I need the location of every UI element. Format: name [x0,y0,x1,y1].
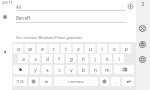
staticText: g [70,56,73,62]
staticText: ?123 [16,79,24,84]
staticText: k [106,56,109,62]
button[interactable]: m [102,65,112,74]
button[interactable]: Leertaste [54,77,98,86]
button[interactable]: n [90,65,100,74]
button[interactable]: Back [2,49,8,55]
staticText: w [28,46,32,52]
button[interactable]: Settings [100,77,109,86]
staticText: f [58,56,60,62]
staticText: t [65,46,67,52]
button[interactable]: i [97,44,107,53]
staticText: b [82,67,85,73]
staticText: x [46,67,49,73]
button[interactable]: More options [141,2,145,6]
button[interactable]: An [16,3,126,11]
staticText: z [77,46,80,52]
button[interactable]: d [42,54,52,63]
button[interactable]: z [73,44,83,53]
staticText: n [94,67,97,73]
staticText: m [105,67,110,73]
button[interactable]: j [90,54,100,63]
button[interactable]: Power [139,41,146,48]
button[interactable]: x [42,65,52,74]
button[interactable]: l [114,54,124,63]
staticText: c [58,67,61,73]
button[interactable]: t [61,44,71,53]
button[interactable]: y [30,65,40,74]
button[interactable]: s [30,54,40,63]
staticText: e [41,46,44,52]
staticText: i [101,46,103,52]
button[interactable]: Add recipient [127,3,134,10]
button[interactable]: u [85,44,95,53]
staticText: y [34,67,37,73]
staticText: de [44,79,49,84]
button[interactable]: v [66,65,76,74]
staticText: d [46,56,49,62]
button[interactable]: Backspace [114,65,134,74]
button[interactable]: g [66,54,76,63]
staticText: An [16,4,22,10]
button[interactable]: o [109,44,119,53]
staticText: 20:11 [2,0,13,6]
button[interactable]: q [13,44,23,53]
staticText: u [89,46,92,52]
staticText: s [34,56,37,62]
staticText: v [70,67,73,73]
button[interactable]: k [102,54,112,63]
button[interactable]: p [121,44,131,53]
staticText: q [17,46,20,52]
staticText: p [125,46,128,52]
staticText: r [53,46,55,52]
staticText: Von meinem Windows Phone gesendet [16,35,83,40]
button[interactable]: Volume [139,56,146,63]
button[interactable]: de [40,77,52,86]
button[interactable]: f [54,54,64,63]
button[interactable]: b [78,65,88,74]
button[interactable]: w [25,44,35,53]
staticText: h [82,56,85,62]
staticText: a [22,56,25,62]
button[interactable]: . [111,77,120,86]
staticText: j [94,56,96,62]
staticText: Betreff [16,15,31,21]
staticText: Leertaste [68,79,84,84]
staticText: l [118,56,120,62]
button[interactable]: Shift [13,65,28,74]
staticText: o [113,46,116,52]
button[interactable]: a [18,54,28,63]
staticText: . [115,79,117,85]
button[interactable]: Enter [122,77,134,86]
button[interactable]: Betreff [16,14,126,22]
button[interactable]: Emoji [29,77,38,86]
button[interactable]: ?123 [13,77,27,86]
button[interactable]: e [37,44,47,53]
button[interactable]: h [78,54,88,63]
button[interactable]: r [49,44,59,53]
button[interactable]: Close [139,25,146,32]
button[interactable]: c [54,65,64,74]
